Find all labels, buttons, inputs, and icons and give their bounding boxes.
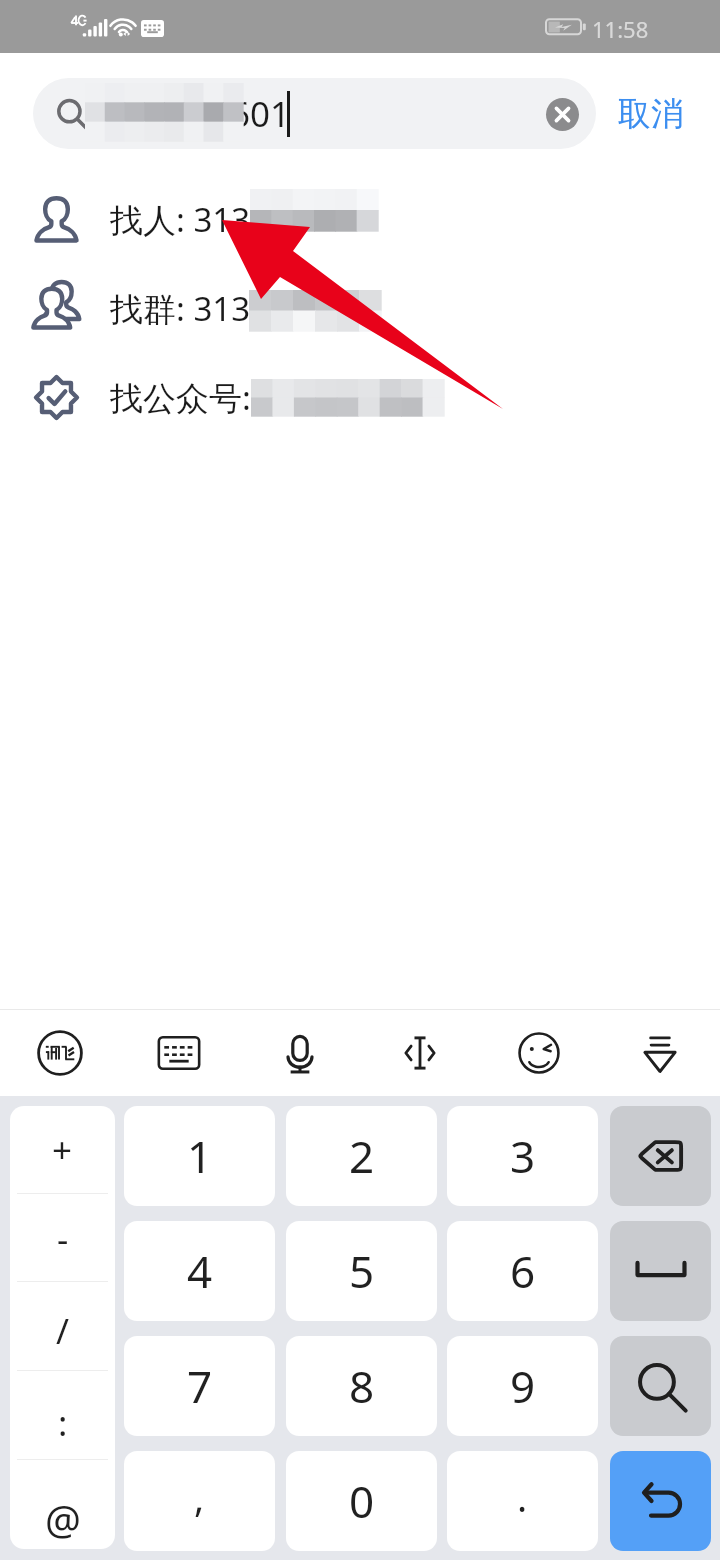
staticText: - <box>57 1215 69 1263</box>
button[interactable]: 找群: 313 <box>0 264 720 352</box>
button[interactable]: 4 <box>124 1221 275 1321</box>
button[interactable]: Search <box>610 1336 711 1436</box>
staticText: / <box>56 1307 70 1355</box>
button[interactable]: . <box>447 1451 598 1551</box>
staticText: 8 <box>349 1356 375 1416</box>
staticText: 7 <box>187 1356 213 1416</box>
staticText: : <box>58 1399 68 1447</box>
button[interactable]: 1 <box>124 1106 275 1206</box>
button[interactable]: + <box>10 1106 115 1194</box>
button[interactable]: Hide keyboard <box>616 1009 704 1096</box>
staticText: 4 <box>187 1241 213 1301</box>
staticText: 0 <box>349 1471 375 1531</box>
button[interactable]: Emoji <box>495 1009 583 1096</box>
button[interactable]: Clear text <box>536 88 588 140</box>
staticText: 取消 <box>618 93 684 135</box>
button[interactable]: Move cursor <box>376 1009 464 1096</box>
button[interactable]: 9 <box>447 1336 598 1436</box>
staticText: 6 <box>510 1241 536 1301</box>
button[interactable]: 取消 <box>606 78 696 149</box>
staticText: 9 <box>510 1356 536 1416</box>
button[interactable]: 601 <box>33 78 596 149</box>
button[interactable]: 0 <box>286 1451 437 1551</box>
button[interactable]: 8 <box>286 1336 437 1436</box>
button[interactable]: 6 <box>447 1221 598 1321</box>
staticText: 找群: 313 <box>110 286 251 331</box>
staticText: 11:58 <box>592 14 649 44</box>
button[interactable]: 7 <box>124 1336 275 1436</box>
staticText: , <box>194 1471 205 1523</box>
button[interactable]: 找人: 313 <box>0 175 720 263</box>
button[interactable]: Input method <box>16 1009 104 1096</box>
button[interactable]: : <box>10 1371 115 1460</box>
button[interactable]: - <box>10 1194 115 1282</box>
button[interactable]: 2 <box>286 1106 437 1206</box>
button[interactable]: , <box>124 1451 275 1551</box>
button[interactable]: @ <box>10 1460 115 1549</box>
button[interactable]: Voice input <box>256 1009 344 1096</box>
staticText: + <box>52 1126 73 1174</box>
staticText: 2 <box>349 1126 375 1186</box>
staticText: 找公众号: <box>110 375 251 420</box>
button[interactable]: Backspace <box>610 1106 711 1206</box>
button[interactable]: 5 <box>286 1221 437 1321</box>
staticText: 1 <box>187 1126 213 1186</box>
button[interactable]: 找公众号: <box>0 353 720 441</box>
staticText: 5 <box>349 1241 375 1301</box>
staticText: . <box>517 1471 528 1523</box>
staticText: 3 <box>510 1126 536 1186</box>
button[interactable]: 3 <box>447 1106 598 1206</box>
button[interactable]: Keyboard layout <box>135 1009 223 1096</box>
button[interactable]: Space <box>610 1221 711 1321</box>
button[interactable]: / <box>10 1282 115 1371</box>
staticText: 找人: 313 <box>110 197 251 242</box>
button[interactable]: Enter <box>610 1451 711 1551</box>
staticText: 601 <box>230 90 291 138</box>
staticText: @ <box>45 1492 81 1546</box>
